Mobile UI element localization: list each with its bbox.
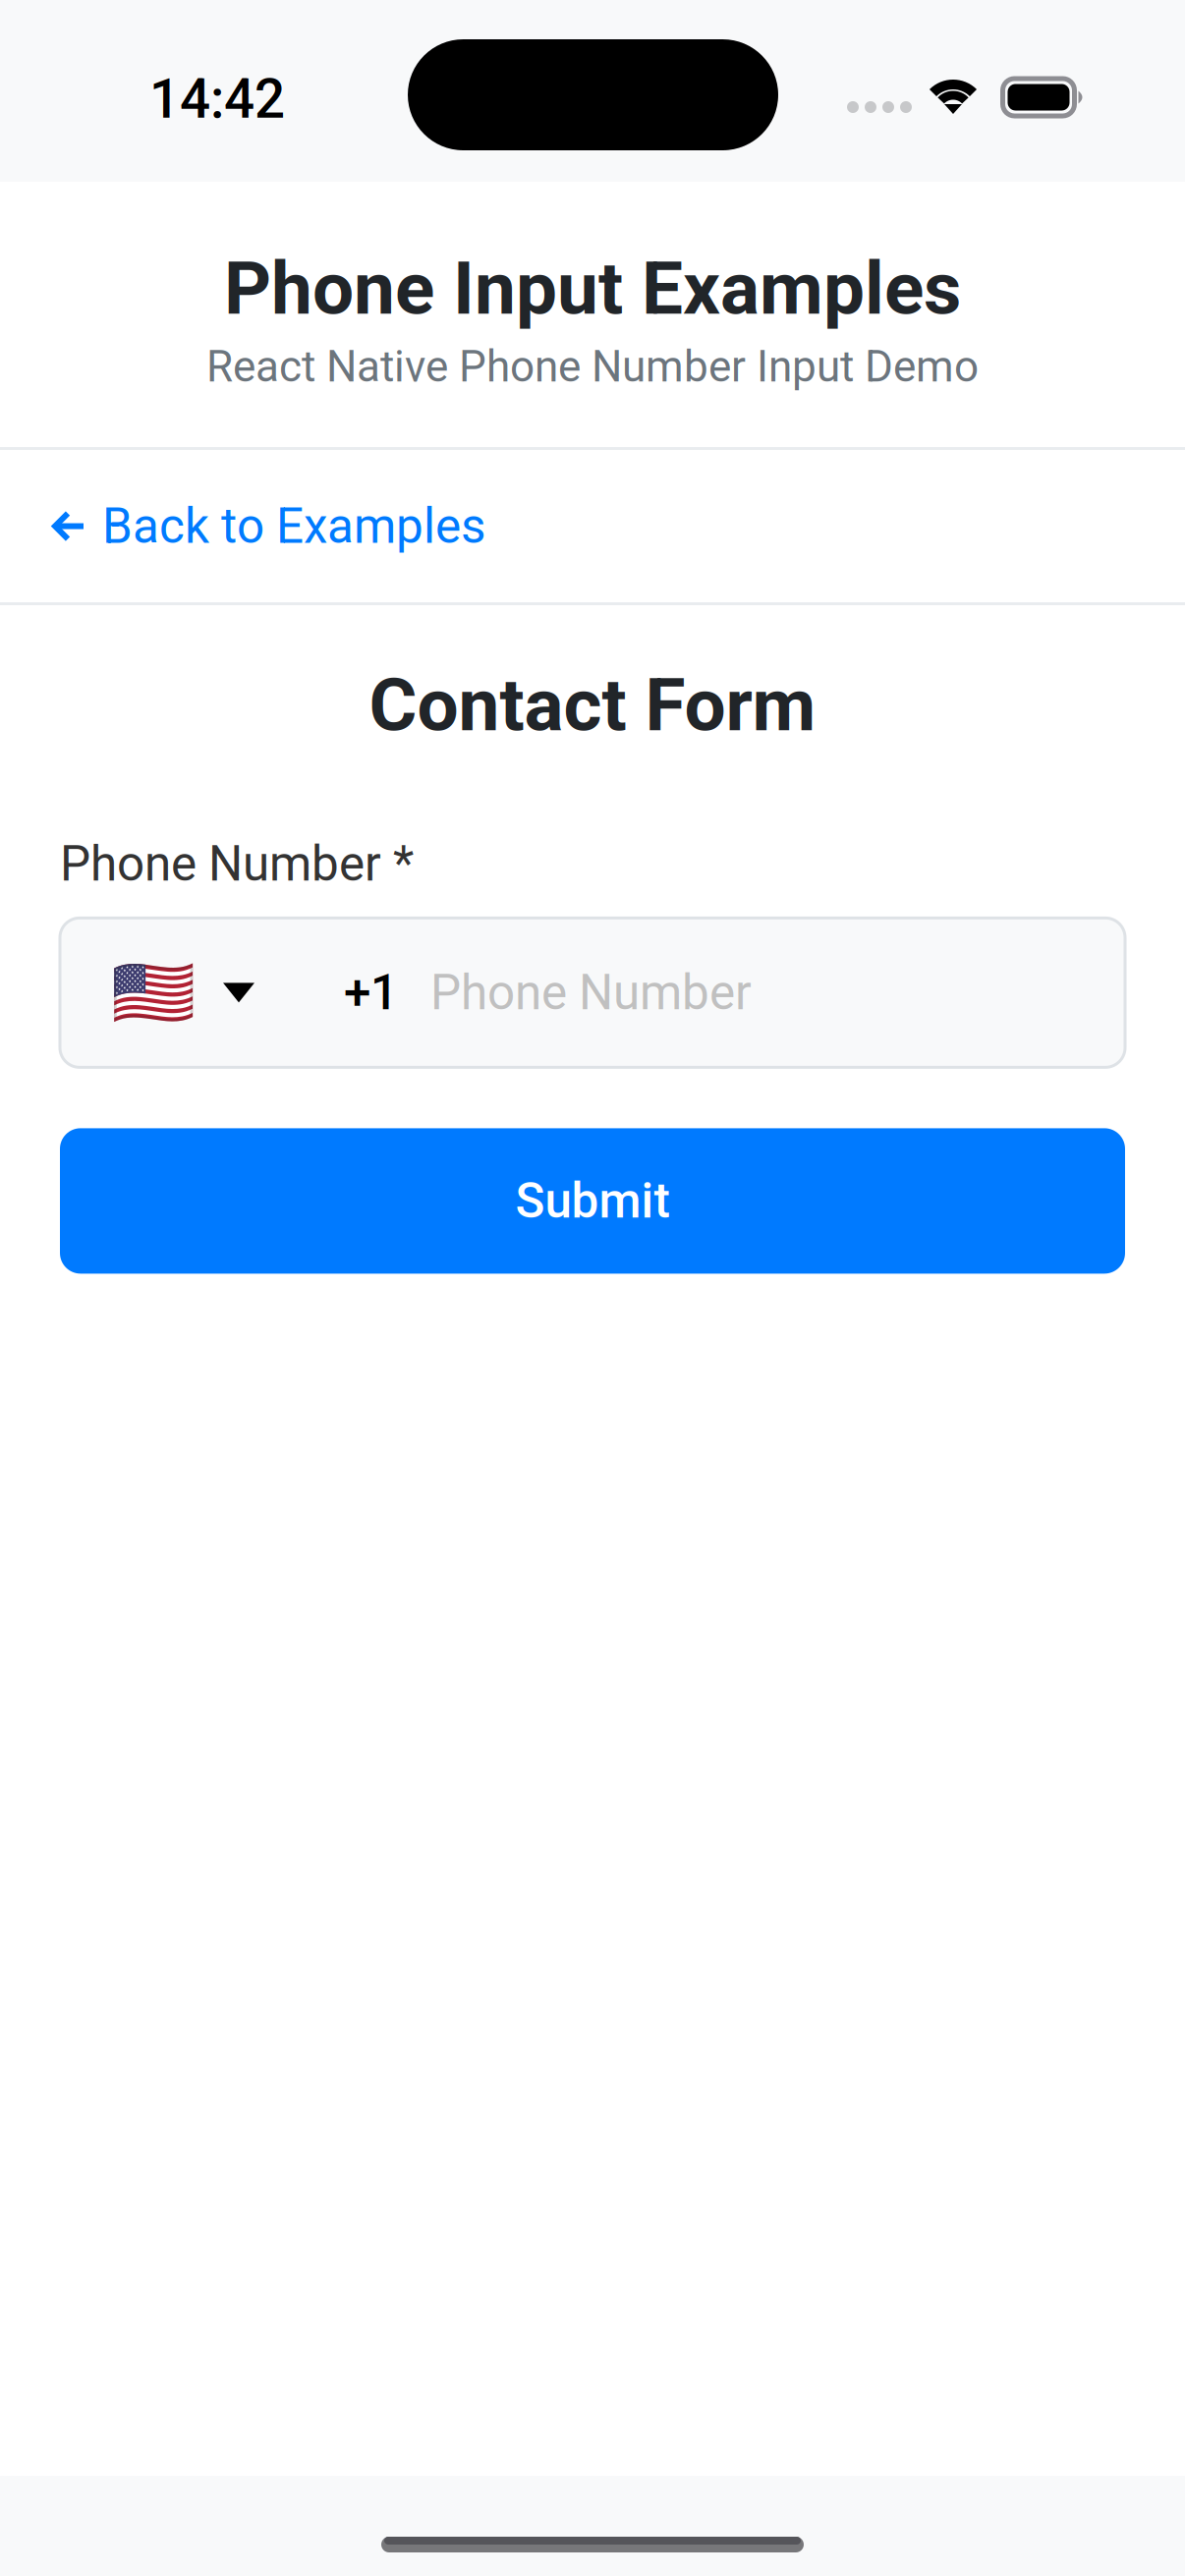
staticText: Phone Number [430,964,752,1021]
staticText: 14:42 [149,68,285,131]
button[interactable]: Select country code [113,963,254,1022]
button[interactable]: Submit [60,1128,1125,1274]
staticText: +1 [344,964,398,1021]
staticText: Phone Number * [60,836,414,892]
staticText: Submit [515,1173,670,1229]
staticText: Back to Examples [102,498,485,555]
staticText: Contact Form [369,662,816,748]
button[interactable]: Back to Examples [0,450,1185,602]
staticText: Phone Input Examples [224,246,961,332]
staticText: 🇺🇸 [111,953,195,1033]
staticText: React Native Phone Number Input Demo [206,341,979,392]
